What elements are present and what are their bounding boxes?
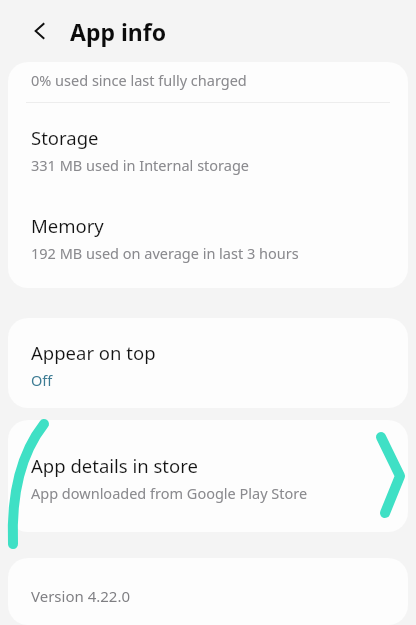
button[interactable]: 0% used since last fully charged [8,62,408,102]
staticText: Off [31,370,53,390]
staticText: Version 4.22.0 [31,586,131,606]
button[interactable]: Storage [8,103,408,195]
staticText: App downloaded from Google Play Store [31,483,308,503]
button[interactable]: Back [18,9,62,53]
button[interactable]: App details in store [8,420,408,532]
staticText: Appear on top [31,340,156,365]
staticText: App details in store [31,453,198,478]
staticText: 0% used since last fully charged [31,70,247,90]
staticText: 331 MB used in Internal storage [31,155,250,175]
staticText: 192 MB used on average in last 3 hours [31,243,299,263]
button[interactable]: Appear on top [8,318,408,408]
staticText: Storage [31,125,99,150]
staticText: Memory [31,213,104,238]
staticText: App info [70,16,167,47]
button[interactable]: Memory [8,195,408,287]
